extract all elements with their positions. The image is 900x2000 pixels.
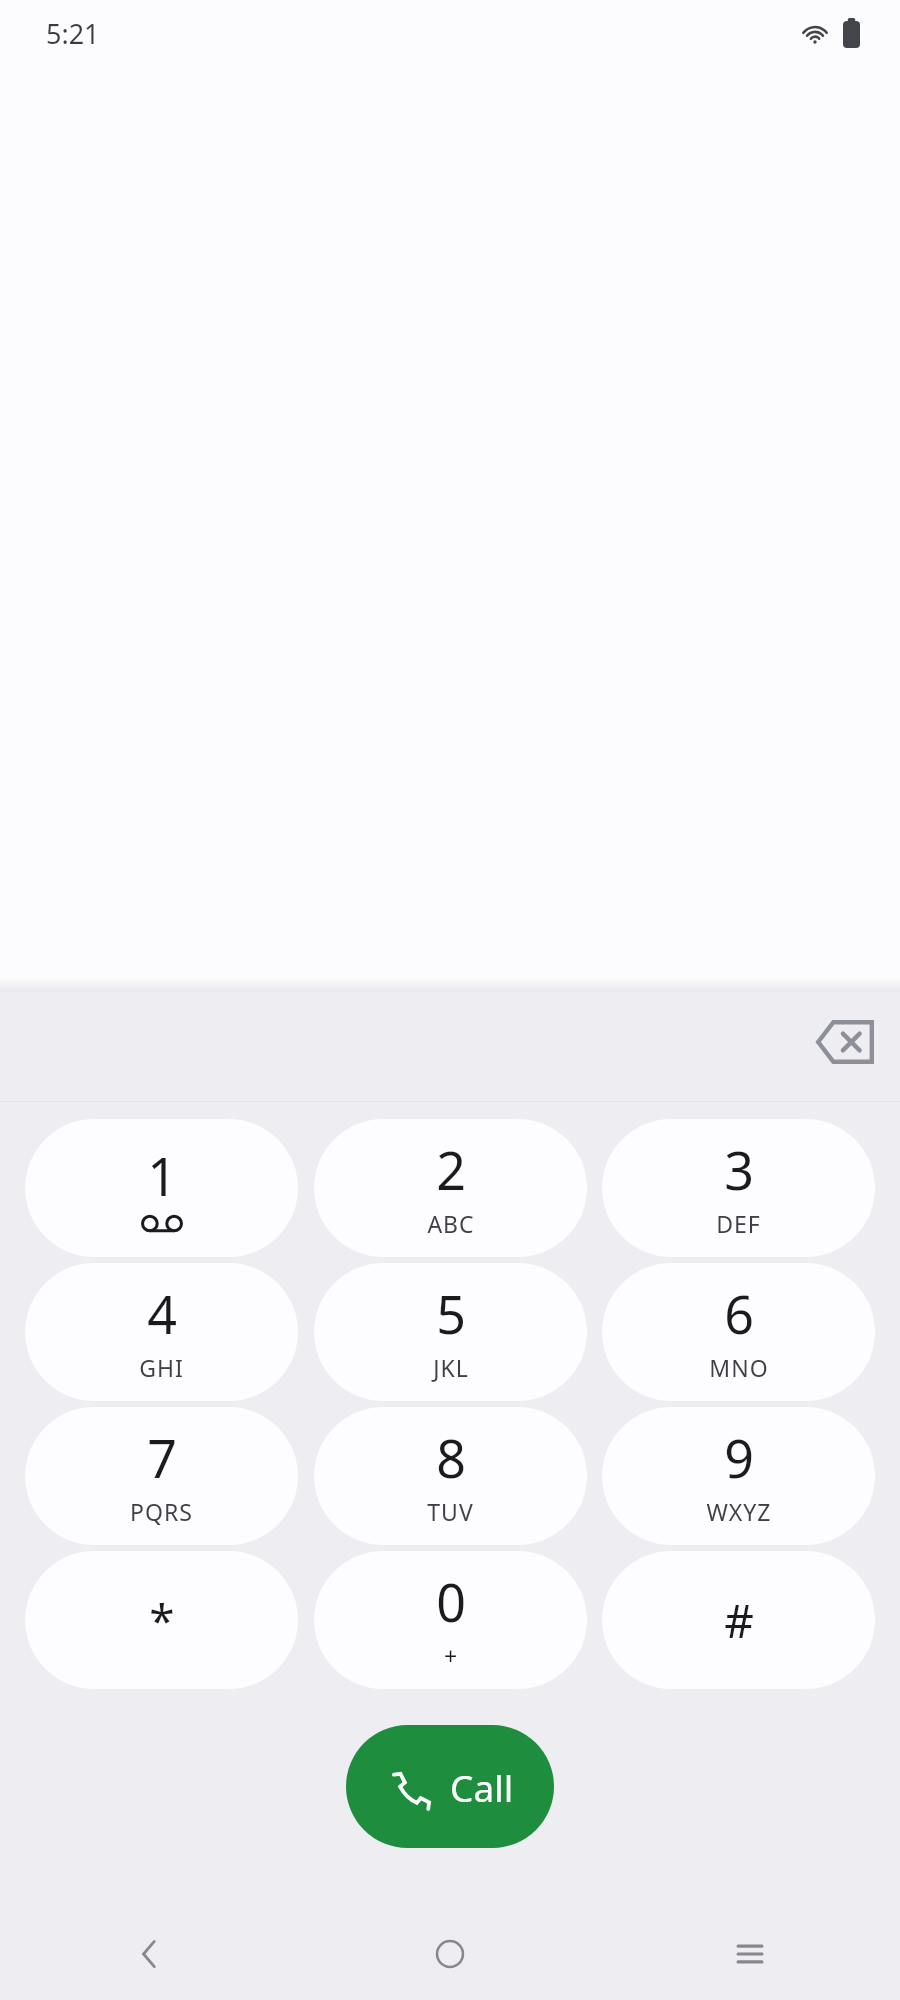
staticText: DEF (716, 1208, 761, 1239)
button[interactable]: 8 (314, 1407, 587, 1545)
button[interactable]: # (602, 1551, 875, 1689)
button[interactable]: Home (300, 1908, 600, 2000)
button[interactable]: 0 (314, 1551, 587, 1689)
staticText: MNO (709, 1352, 769, 1383)
staticText: 4 (147, 1278, 177, 1349)
staticText: PQRS (130, 1496, 193, 1527)
staticText: WXYZ (706, 1496, 772, 1527)
staticText: 8 (436, 1422, 466, 1493)
button[interactable]: * (25, 1551, 298, 1689)
staticText: GHI (139, 1352, 184, 1383)
staticText: 1 (147, 1140, 177, 1211)
button[interactable]: 5 (314, 1263, 587, 1401)
button[interactable]: 6 (602, 1263, 875, 1401)
staticText: 0 (436, 1566, 466, 1637)
button[interactable]: 9 (602, 1407, 875, 1545)
staticText: # (724, 1589, 754, 1652)
staticText: 2 (436, 1134, 466, 1205)
staticText: * (149, 1589, 175, 1652)
button[interactable]: 4 (25, 1263, 298, 1401)
staticText: 5 (436, 1278, 466, 1349)
staticText: 5:21 (46, 15, 100, 52)
button[interactable]: 7 (25, 1407, 298, 1545)
button[interactable]: 3 (602, 1119, 875, 1257)
button[interactable]: 1 (25, 1119, 298, 1257)
staticText: 3 (724, 1134, 754, 1205)
staticText: TUV (427, 1496, 474, 1527)
staticText: JKL (433, 1352, 469, 1383)
staticText: Call (450, 1762, 514, 1812)
staticText: 9 (724, 1422, 754, 1493)
button[interactable]: Call (346, 1725, 554, 1848)
staticText: 7 (147, 1422, 177, 1493)
button[interactable]: Backspace (803, 1000, 887, 1084)
button[interactable]: Back (0, 1908, 300, 2000)
staticText: + (444, 1640, 458, 1671)
staticText: ABC (427, 1208, 475, 1239)
button[interactable]: 2 (314, 1119, 587, 1257)
button[interactable]: Recent apps (600, 1908, 900, 2000)
staticText: 6 (724, 1278, 754, 1349)
